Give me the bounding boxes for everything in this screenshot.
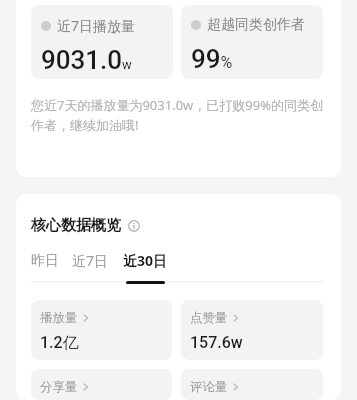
staticText: 评论量 xyxy=(190,379,228,395)
button[interactable]: 近7日 xyxy=(72,251,109,284)
staticText: 您近7天的播放量为9031.0w，已打败99%的同类创作者，继续加油哦! xyxy=(31,96,323,134)
staticText: 1.2亿 xyxy=(40,333,79,353)
staticText: 播放量 xyxy=(40,310,78,326)
button[interactable]: 播放量 xyxy=(31,300,172,360)
button[interactable]: 评论量 xyxy=(181,369,323,400)
button[interactable]: 昨日 xyxy=(31,252,59,284)
button[interactable]: 超越同类创作者 xyxy=(181,5,323,79)
button[interactable]: 分享量 xyxy=(31,369,172,400)
staticText: 157.6w xyxy=(190,333,243,352)
button[interactable]: 点赞量 xyxy=(181,300,323,360)
button[interactable]: 近30日 xyxy=(123,251,168,284)
button[interactable]: 近7日播放量 xyxy=(31,5,173,79)
staticText: 近30日 xyxy=(123,251,168,270)
staticText: 核心数据概览 xyxy=(31,216,121,235)
staticText: 超越同类创作者 xyxy=(207,16,305,34)
staticText: 9031.0w xyxy=(41,45,132,75)
staticText: 分享量 xyxy=(40,379,78,395)
staticText: 99% xyxy=(191,44,233,74)
staticText: 近7日播放量 xyxy=(57,16,136,35)
staticText: 点赞量 xyxy=(190,310,228,326)
button[interactable]: 数据说明 xyxy=(127,219,141,233)
staticText: 近7日 xyxy=(72,251,109,270)
staticText: 昨日 xyxy=(31,252,59,270)
